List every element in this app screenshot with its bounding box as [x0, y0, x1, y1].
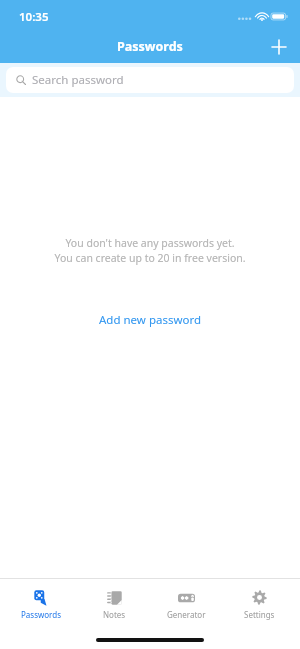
- staticText: Passwords: [21, 609, 62, 620]
- staticText: Search password: [32, 72, 124, 88]
- button[interactable]: Add password: [264, 32, 294, 62]
- button[interactable]: Add new password: [87, 307, 214, 333]
- staticText: Passwords: [117, 38, 183, 55]
- staticText: Generator: [167, 609, 206, 620]
- staticText: 10:35: [19, 9, 49, 25]
- button[interactable]: Search password: [6, 67, 294, 93]
- staticText: Settings: [244, 609, 275, 620]
- button[interactable]: Generator: [155, 587, 217, 622]
- staticText: Add new password: [99, 312, 202, 328]
- button[interactable]: Notes: [83, 587, 145, 622]
- staticText: You don't have any passwords yet. You ca…: [0, 236, 300, 265]
- button[interactable]: Passwords: [10, 587, 72, 622]
- staticText: Notes: [103, 609, 126, 620]
- button[interactable]: Settings: [228, 587, 290, 622]
